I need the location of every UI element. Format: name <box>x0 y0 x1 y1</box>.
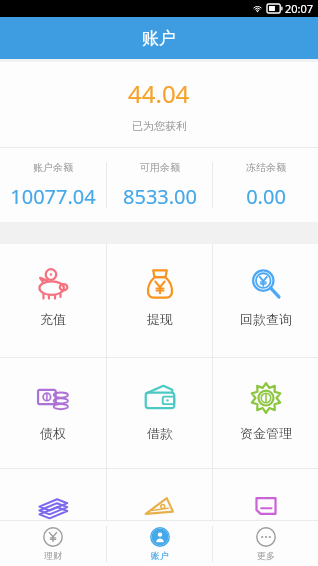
other: 理财产品 <box>36 492 70 520</box>
button[interactable]: 借款 <box>107 358 212 468</box>
other: 优惠券 <box>143 492 177 520</box>
other: 资金管理 <box>249 381 283 415</box>
staticText: 冻结余额 <box>246 161 286 174</box>
staticText: 借款 <box>147 425 173 441</box>
staticText: 账户 <box>151 550 169 561</box>
button[interactable]: 债权 <box>0 358 106 468</box>
staticText: 0.00 <box>246 183 286 210</box>
staticText: 10077.04 <box>10 183 96 210</box>
button[interactable]: 回款查询 <box>213 244 318 357</box>
button[interactable]: 理财产品 <box>0 469 106 520</box>
staticText: 充值 <box>40 311 66 327</box>
staticText: 提现 <box>147 311 173 327</box>
other: 债权 <box>36 381 70 415</box>
staticText: 账户 <box>142 28 176 49</box>
staticText: 更多 <box>257 550 275 561</box>
staticText: 可用余额 <box>140 161 180 174</box>
other: 充值 <box>36 267 70 301</box>
other: 借款 <box>143 381 177 415</box>
staticText: 债权 <box>40 425 66 441</box>
staticText: 账户余额 <box>33 161 73 174</box>
staticText: 理财 <box>44 550 62 561</box>
staticText: 20:07 <box>285 1 314 16</box>
button[interactable]: 理财 <box>0 521 106 566</box>
button[interactable]: 充值 <box>0 244 106 357</box>
button[interactable]: 账户余额 <box>0 148 106 222</box>
other: 账户 <box>150 527 170 547</box>
button[interactable]: 消息 <box>213 469 318 520</box>
button[interactable]: 可用余额 <box>107 148 212 222</box>
other: 理财 <box>43 527 63 547</box>
other: 消息 <box>249 492 283 520</box>
other: 回款查询 <box>249 267 283 301</box>
staticText: 资金管理 <box>240 425 292 441</box>
button[interactable]: 更多 <box>213 521 318 566</box>
button[interactable]: 资金管理 <box>213 358 318 468</box>
button[interactable]: 提现 <box>107 244 212 357</box>
staticText: 回款查询 <box>240 311 292 327</box>
button[interactable]: 冻结余额 <box>213 148 318 222</box>
button[interactable]: 优惠券 <box>107 469 212 520</box>
staticText: 44.04 <box>128 77 190 110</box>
other: 提现 <box>143 267 177 301</box>
other: 更多 <box>256 527 276 547</box>
button[interactable]: 账户 <box>107 521 212 566</box>
staticText: 已为您获利 <box>132 119 187 133</box>
staticText: 8533.00 <box>123 183 197 210</box>
